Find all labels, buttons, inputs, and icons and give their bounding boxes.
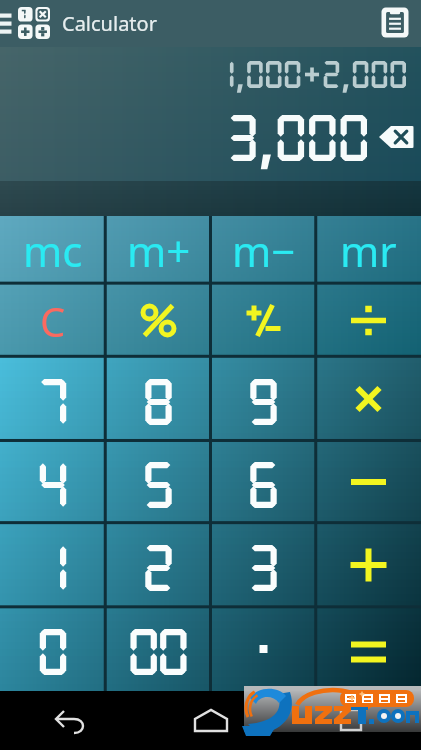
button[interactable]: 4	[0, 441, 106, 523]
button[interactable]: Plus	[316, 523, 421, 607]
button[interactable]: Recent apps	[281, 691, 421, 750]
button[interactable]: 3	[211, 523, 316, 607]
staticText: m−	[232, 222, 296, 279]
button[interactable]: mc	[0, 216, 106, 284]
button[interactable]: Plus minus	[211, 284, 316, 357]
button[interactable]: m plus	[106, 216, 211, 284]
button[interactable]: 6	[211, 441, 316, 523]
button[interactable]: 2	[106, 523, 211, 607]
button[interactable]: Home	[141, 691, 281, 750]
button[interactable]: 7	[0, 357, 106, 441]
button[interactable]: 1	[0, 523, 106, 607]
button[interactable]: History	[369, 0, 421, 47]
button[interactable]: Navigation menu	[0, 0, 56, 47]
button[interactable]: m minus	[211, 216, 316, 284]
button[interactable]: Equals	[316, 607, 421, 691]
button[interactable]: 0	[0, 607, 106, 691]
button[interactable]: Decimal point	[211, 607, 316, 691]
staticText: C	[40, 294, 66, 348]
staticText: mc	[23, 222, 83, 279]
button[interactable]: 8	[106, 357, 211, 441]
button[interactable]: 9	[211, 357, 316, 441]
button[interactable]: Clear	[0, 284, 106, 357]
button[interactable]: Minus	[316, 441, 421, 523]
button[interactable]: Divide	[316, 284, 421, 357]
staticText: mr	[340, 222, 397, 279]
button[interactable]: Percent	[106, 284, 211, 357]
button[interactable]: Back	[0, 691, 141, 750]
button[interactable]: 5	[106, 441, 211, 523]
button[interactable]: Backspace	[373, 120, 419, 154]
staticText: Calculator	[62, 10, 157, 37]
button[interactable]: Multiply	[316, 357, 421, 441]
button[interactable]: mr	[316, 216, 421, 284]
staticText: m+	[127, 222, 191, 279]
button[interactable]: 00	[106, 607, 211, 691]
